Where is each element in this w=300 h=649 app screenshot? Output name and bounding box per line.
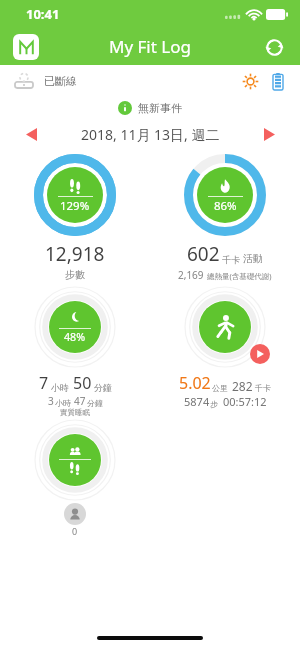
staticText: 步 [210, 399, 218, 409]
staticText: 小時 [51, 382, 69, 393]
staticText: 分鐘 [94, 382, 112, 393]
staticText: 3 [48, 394, 54, 408]
button[interactable]: Previous day [20, 123, 42, 145]
button[interactable]: 已斷線 [14, 72, 77, 90]
staticText: My Fit Log [109, 35, 191, 58]
staticText: 公里 [212, 383, 228, 393]
button[interactable]: 129% [0, 154, 150, 281]
staticText: 千卡 [222, 254, 240, 265]
staticText: 282 [232, 378, 253, 394]
button[interactable]: Start activity [150, 286, 300, 409]
button[interactable]: 0 [0, 419, 150, 537]
staticText: 86% [214, 198, 237, 214]
button[interactable]: 86% [150, 154, 300, 282]
staticText: 47 [74, 394, 86, 408]
staticText: 129% [60, 198, 90, 214]
button[interactable]: Battery [268, 71, 288, 91]
staticText: 5.02 [179, 372, 211, 394]
staticText: 2,169 [178, 268, 204, 282]
staticText: 小時 [55, 398, 71, 408]
staticText: 千卡 [255, 383, 271, 393]
staticText: 50 [73, 372, 92, 394]
staticText: 7 [39, 372, 49, 394]
button[interactable]: Brightness [240, 71, 260, 91]
button[interactable]: Start activity [250, 344, 270, 364]
staticText: 00:57:12 [223, 394, 267, 409]
staticText: 活動 [243, 252, 263, 265]
staticText: 5874 [184, 394, 210, 409]
staticText: 12,918 [45, 241, 105, 267]
staticText: 0 [72, 525, 78, 537]
staticText: 已斷線 [44, 74, 77, 88]
staticText: 步數 [65, 268, 85, 281]
staticText: 48% [64, 330, 86, 345]
staticText: 602 [187, 241, 220, 267]
staticText: 分鐘 [87, 398, 103, 408]
button[interactable]: 48% [0, 286, 150, 417]
staticText: 總熱量(含基礎代謝) [207, 271, 272, 281]
staticText: 2018, 11月 13日, 週二 [81, 125, 220, 144]
button[interactable]: 無新事件 [0, 96, 300, 120]
button[interactable]: App logo [13, 34, 39, 60]
staticText: 無新事件 [138, 101, 182, 115]
button[interactable]: Refresh [260, 33, 288, 61]
button[interactable]: Next day [258, 123, 280, 145]
staticText: 10:41 [26, 5, 60, 23]
staticText: 實質睡眠 [60, 408, 90, 417]
